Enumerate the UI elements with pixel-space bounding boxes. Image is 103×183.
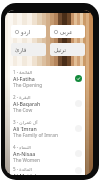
other: Download — [75, 150, 82, 157]
staticText: The Cow — [13, 107, 33, 114]
staticText: قارئ — [15, 47, 27, 53]
button[interactable]: 1 - الفاتحة — [10, 66, 85, 91]
staticText: 1 - الفاتحة — [13, 69, 33, 75]
button[interactable]: قارئ — [11, 43, 46, 56]
button[interactable]: 2 - البقرة — [10, 91, 85, 116]
staticText: ترتيل — [54, 47, 66, 53]
staticText: 4 - النساء — [13, 144, 31, 150]
staticText: Al-Maidah — [13, 172, 39, 175]
staticText: The Opening — [13, 82, 43, 89]
staticText: 3 - آل عمران — [13, 119, 38, 125]
button[interactable]: اردو — [11, 25, 46, 38]
staticText: Al-Fatiha — [13, 75, 35, 82]
other: Downloaded — [75, 75, 82, 82]
other: Download — [75, 167, 82, 174]
button[interactable]: 3 - آل عمران — [10, 116, 85, 141]
staticText: 5 - المائدة — [13, 166, 32, 172]
staticText: 2 - البقرة — [13, 94, 31, 100]
button[interactable]: عربى — [50, 25, 85, 38]
staticText: Ali 'Imran — [13, 125, 37, 132]
staticText: Al-Baqarah — [13, 100, 41, 107]
other: Download — [75, 100, 82, 107]
staticText: عربى — [60, 29, 73, 35]
staticText: The Women — [13, 157, 41, 164]
staticText: An-Nisaa — [13, 150, 36, 157]
other: Download — [75, 125, 82, 132]
button[interactable]: ترتيل — [50, 43, 85, 56]
staticText: The Family of Imran — [13, 132, 58, 139]
staticText: اردو — [21, 29, 31, 35]
button[interactable]: 5 - المائدة — [10, 166, 85, 175]
button[interactable]: 4 - النساء — [10, 141, 85, 166]
